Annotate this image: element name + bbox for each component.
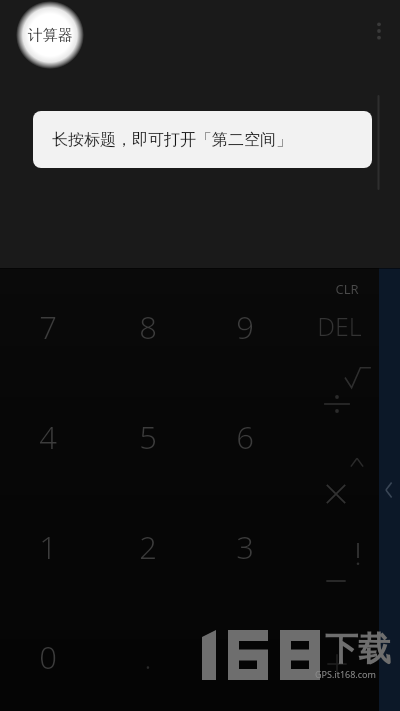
button[interactable]: More options <box>362 10 396 52</box>
button[interactable]: 8 <box>105 284 191 370</box>
button[interactable]: Multiply <box>313 471 359 517</box>
staticText: 4 <box>39 416 57 458</box>
button[interactable]: 7 <box>5 284 91 370</box>
button[interactable]: 1 <box>5 504 91 590</box>
button[interactable]: Square root <box>334 359 378 399</box>
button[interactable]: CLR <box>319 274 375 304</box>
staticText: 6 <box>236 416 254 458</box>
button[interactable]: 0 <box>5 614 91 700</box>
button[interactable]: 3 <box>202 504 288 590</box>
button[interactable]: 9 <box>202 284 288 370</box>
button[interactable]: Minus <box>314 566 358 596</box>
staticText: CLR <box>335 280 359 298</box>
staticText: . <box>144 637 152 678</box>
staticText: DEL <box>317 309 362 343</box>
staticText: 5 <box>139 416 157 458</box>
button[interactable]: 计算器 <box>18 12 82 58</box>
staticText: 1 <box>39 526 57 568</box>
button[interactable]: Plus <box>315 642 359 686</box>
staticText: 0 <box>39 636 57 678</box>
button[interactable]: DEL <box>304 306 374 346</box>
staticText: 2 <box>139 526 157 568</box>
button[interactable]: Previous panel <box>378 473 400 507</box>
button[interactable]: 长按标题，即可打开「第二空间」 <box>33 111 372 168</box>
button[interactable]: Power <box>340 448 374 478</box>
staticText: 长按标题，即可打开「第二空间」 <box>52 130 292 150</box>
staticText: GPS.it168.com <box>315 668 376 680</box>
staticText: 7 <box>39 306 57 348</box>
button[interactable]: 5 <box>105 394 191 480</box>
button[interactable]: Divide <box>314 381 360 427</box>
button[interactable]: 2 <box>105 504 191 590</box>
button[interactable]: 4 <box>5 394 91 480</box>
button[interactable]: Factorial <box>344 535 372 571</box>
button[interactable]: 6 <box>202 394 288 480</box>
staticText: 下载 <box>325 628 391 670</box>
staticText: 3 <box>236 526 254 568</box>
staticText: 计算器 <box>28 26 73 45</box>
staticText: 9 <box>236 306 254 348</box>
staticText: 8 <box>139 306 157 348</box>
